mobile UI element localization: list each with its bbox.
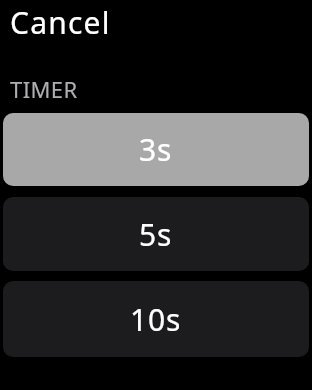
staticText: 3s xyxy=(139,129,173,170)
button[interactable]: 5s xyxy=(3,197,309,271)
staticText: 10s xyxy=(130,299,182,340)
staticText: TIMER xyxy=(10,74,78,104)
button[interactable]: 10s xyxy=(3,281,309,357)
staticText: Cancel xyxy=(10,2,111,43)
staticText: 5s xyxy=(139,214,173,255)
button[interactable]: 3s xyxy=(3,113,309,186)
button[interactable]: Cancel xyxy=(10,2,111,43)
